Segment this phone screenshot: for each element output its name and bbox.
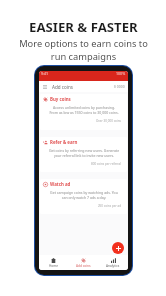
staticText: 100% — [116, 71, 126, 76]
button[interactable]: Add — [112, 242, 124, 254]
staticText: Analytics — [106, 264, 120, 268]
button[interactable]: Analytics — [98, 258, 128, 268]
button[interactable]: Refer & earn — [40, 137, 127, 172]
staticText: Add coins — [76, 264, 91, 268]
staticText: 9:41 — [41, 71, 49, 76]
staticText: Buy coins — [50, 96, 71, 102]
button[interactable]: Watch ad — [40, 179, 127, 214]
staticText: Watch ad — [50, 181, 71, 187]
button[interactable]: Add coins — [68, 258, 98, 268]
staticText: EASIER & FASTER — [29, 18, 138, 36]
staticText: $ 0000 — [114, 84, 125, 89]
staticText: 250 coins per ad — [43, 204, 121, 208]
staticText: Refer & earn — [50, 139, 78, 145]
staticText: Add coins — [52, 84, 73, 90]
staticText: Over 30,000 coins — [43, 119, 121, 123]
button[interactable]: Home — [39, 258, 68, 268]
staticText: Access unlimited coins by purchasing. Fr… — [47, 105, 121, 115]
staticText: More options to earn coins to run campai… — [19, 37, 148, 63]
staticText: 800 coins per referral — [43, 162, 121, 166]
staticText: Get campaign coins by watching ads. You … — [47, 190, 121, 200]
staticText: Get coins by referring new users. Genera… — [47, 148, 121, 158]
button[interactable]: Menu — [42, 84, 48, 90]
button[interactable]: Buy coins — [40, 94, 127, 130]
staticText: Home — [49, 264, 59, 268]
